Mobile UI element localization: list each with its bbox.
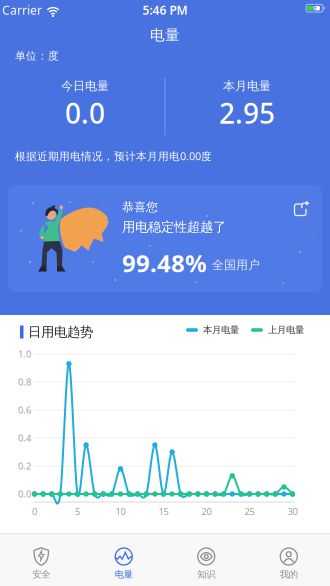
staticText: 本月电量 (203, 324, 239, 336)
button[interactable]: 电量 (82, 533, 165, 586)
staticText: 根据近期用电情况，预计本月用电0.00度 (15, 149, 212, 163)
staticText: 0.2 (18, 460, 31, 472)
staticText: 10 (115, 505, 125, 518)
button[interactable]: 本月电量 (186, 324, 239, 336)
staticText: 电量 (150, 26, 180, 44)
staticText: 25 (244, 505, 254, 518)
staticText: 我的 (280, 569, 298, 580)
staticText: 今日电量 (61, 79, 109, 93)
staticText: 30 (287, 505, 297, 518)
staticText: 用电稳定性超越了 (122, 219, 226, 235)
staticText: 单位：度 (15, 49, 59, 62)
staticText: 上月电量 (268, 324, 304, 336)
staticText: 2.95 (219, 94, 275, 132)
staticText: 5 (75, 505, 80, 518)
staticText: 15 (158, 505, 168, 518)
staticText: 0.6 (18, 404, 31, 416)
staticText: 知识 (197, 569, 215, 580)
button[interactable] (8, 185, 322, 292)
button[interactable]: 我的 (247, 533, 330, 586)
button[interactable]: 上月电量 (251, 324, 304, 336)
staticText: 0 (32, 505, 37, 518)
staticText: 0.4 (18, 432, 31, 444)
staticText: 5:46 PM (142, 2, 187, 18)
staticText: 0.0 (18, 488, 31, 500)
staticText: 全国用户 (212, 258, 260, 272)
staticText: 电量 (115, 569, 133, 580)
staticText: 0.8 (18, 376, 31, 388)
button[interactable]: 安全 (0, 533, 82, 586)
staticText: 1.0 (18, 348, 31, 360)
staticText: 20 (201, 505, 211, 518)
staticText: 安全 (32, 569, 50, 580)
staticText: 恭喜您 (122, 200, 158, 214)
button[interactable]: Share (294, 201, 308, 215)
staticText: 日用电趋势 (28, 324, 93, 340)
staticText: 0.0 (65, 94, 105, 132)
staticText: 本月电量 (223, 79, 271, 93)
staticText: Carrier (2, 2, 42, 18)
button[interactable]: 知识 (165, 533, 247, 586)
staticText: 99.48% (122, 247, 207, 279)
